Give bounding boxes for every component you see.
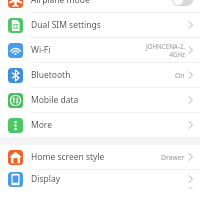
button[interactable]: Home screen style [0,145,200,169]
staticText: JOHNCENA-2. [145,42,185,50]
other: Bluetooth [8,68,23,83]
staticText: 4GHz [169,50,185,58]
staticText: Home screen style [31,151,161,163]
button[interactable]: Mobile data [0,88,200,112]
button[interactable]: Airplane mode [0,0,200,12]
staticText: Mobile data [31,94,188,106]
button[interactable]: More [0,113,200,137]
staticText: Bluetooth [31,69,175,81]
staticText: Wi-Fi [31,44,145,56]
other: Home screen style [8,150,23,165]
button[interactable]: Display [0,170,200,188]
staticText: On [175,71,185,80]
button[interactable]: Wi-Fi [0,38,200,62]
button[interactable]: Dual SIM settings [0,13,200,37]
staticText: Drawer [161,153,185,162]
staticText: Display [31,173,188,185]
staticText: Airplane mode [31,0,172,6]
other: Display [8,172,23,187]
other: Airplane mode [8,0,23,8]
other: Wi-Fi [8,43,23,58]
staticText: Dual SIM settings [31,19,188,31]
staticText: More [31,119,188,131]
button[interactable]: Bluetooth [0,63,200,87]
button[interactable]: Toggle airplane mode [172,0,193,6]
other: More [8,118,23,133]
other: Dual SIM settings [8,18,23,33]
other: Mobile data [8,93,23,108]
